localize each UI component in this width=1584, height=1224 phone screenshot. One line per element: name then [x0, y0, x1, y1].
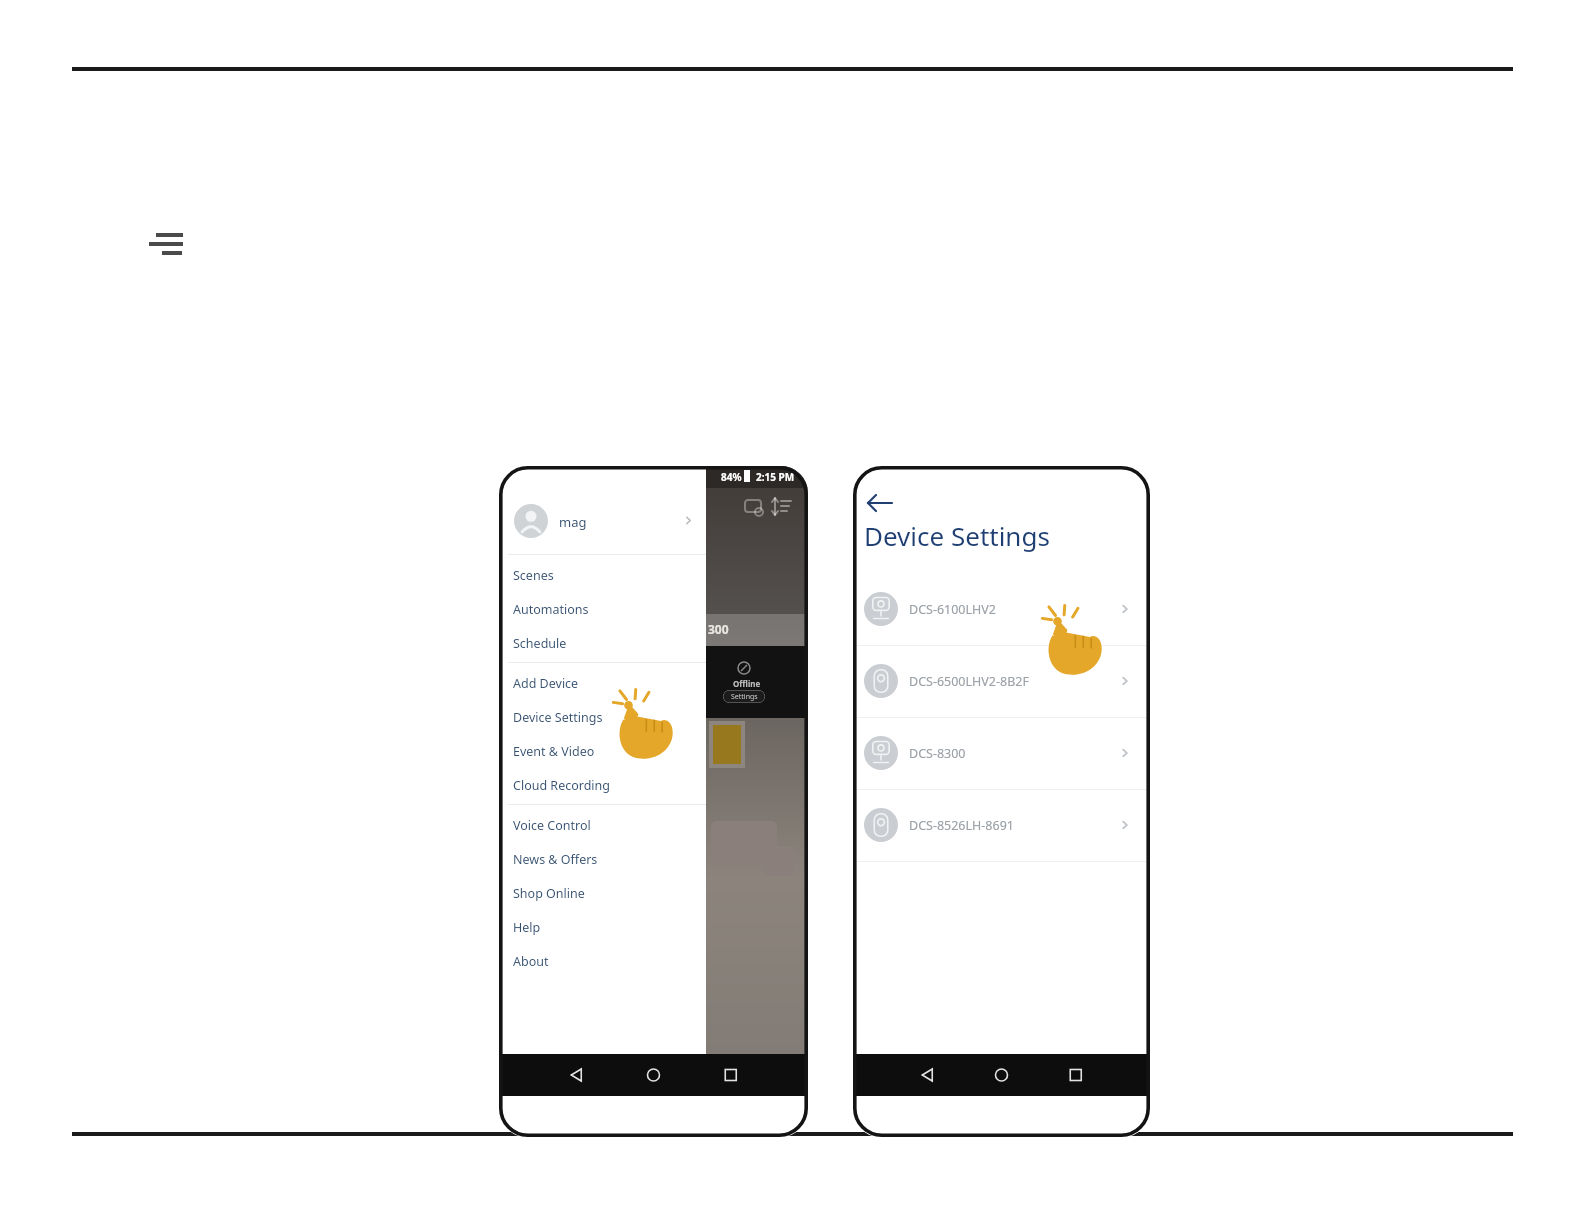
- staticText: About: [513, 953, 549, 970]
- staticText: Schedule: [513, 635, 567, 652]
- staticText: Add Device: [513, 675, 579, 692]
- button[interactable]: DCS-6500LHV2-8B2F: [857, 645, 1146, 717]
- staticText: DCS-8300: [909, 745, 966, 762]
- staticText: mag: [559, 513, 587, 531]
- staticText: Device Settings: [864, 518, 1050, 553]
- staticText: Shop Online: [513, 885, 585, 902]
- staticText: DCS-6100LHV2: [909, 601, 996, 618]
- staticText: Offline: [733, 678, 761, 689]
- button[interactable]: DCS-8300: [857, 717, 1146, 789]
- staticText: Scenes: [513, 567, 554, 584]
- button[interactable]: Shop Online: [499, 876, 706, 910]
- button[interactable]: Add Device: [499, 666, 706, 700]
- button[interactable]: Back: [861, 484, 899, 522]
- staticText: Settings: [731, 692, 758, 702]
- button[interactable]: Device Settings: [499, 700, 706, 734]
- button[interactable]: Schedule: [499, 626, 706, 660]
- staticText: News & Offers: [513, 851, 598, 868]
- button[interactable]: About: [499, 944, 706, 978]
- button[interactable]: News & Offers: [499, 842, 706, 876]
- staticText: Device Settings: [513, 709, 603, 726]
- staticText: Event & Video: [513, 743, 595, 760]
- button[interactable]: Cloud Recording: [499, 768, 706, 802]
- button[interactable]: Menu: [145, 220, 193, 268]
- button[interactable]: Help: [499, 910, 706, 944]
- staticText: 300: [708, 621, 729, 637]
- staticText: Cloud Recording: [513, 777, 610, 794]
- staticText: Help: [513, 919, 541, 936]
- button[interactable]: Automations: [499, 592, 706, 626]
- staticText: Automations: [513, 601, 589, 618]
- staticText: 84%: [721, 470, 742, 484]
- button[interactable]: DCS-6100LHV2: [857, 573, 1146, 645]
- button[interactable]: DCS-8526LH-8691: [857, 789, 1146, 861]
- button[interactable]: mag: [507, 496, 706, 546]
- staticText: 2:15 PM: [756, 470, 795, 484]
- button[interactable]: Settings: [723, 690, 765, 703]
- button[interactable]: Voice Control: [499, 808, 706, 842]
- staticText: Voice Control: [513, 817, 591, 834]
- button[interactable]: Scenes: [499, 558, 706, 592]
- staticText: DCS-8526LH-8691: [909, 817, 1014, 834]
- button[interactable]: Event & Video: [499, 734, 706, 768]
- staticText: DCS-6500LHV2-8B2F: [909, 673, 1029, 690]
